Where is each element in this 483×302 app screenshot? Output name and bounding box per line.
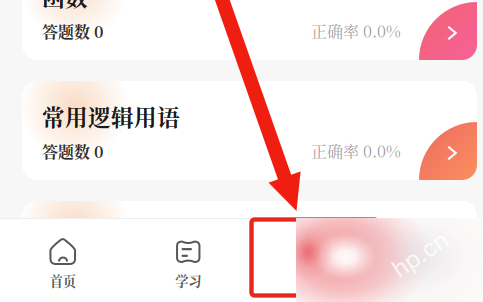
button[interactable]: 函数: [22, 0, 477, 60]
staticText: 答题数 0: [42, 260, 103, 283]
staticText: 答题数 0: [42, 20, 103, 43]
staticText: 正确率 0.0%: [311, 139, 401, 162]
staticText: 不等式: [42, 220, 111, 253]
staticText: 正确率 0.0%: [311, 259, 401, 282]
button[interactable]: 我的: [376, 219, 483, 302]
staticText: 函数: [42, 0, 88, 13]
staticText: 正确率 0.0%: [311, 19, 401, 42]
staticText: 答题数 0: [42, 140, 103, 163]
staticText: 首页: [50, 271, 76, 290]
staticText: 练习: [301, 271, 327, 290]
button[interactable]: 常用逻辑用语: [22, 81, 477, 180]
button[interactable]: 练习: [251, 219, 376, 302]
staticText: 常用逻辑用语: [42, 100, 180, 133]
button[interactable]: 不等式: [22, 201, 477, 300]
button[interactable]: 学习: [125, 219, 251, 302]
staticText: hp.cn: [389, 239, 451, 268]
staticText: 学习: [175, 271, 201, 290]
button[interactable]: 首页: [0, 219, 125, 302]
